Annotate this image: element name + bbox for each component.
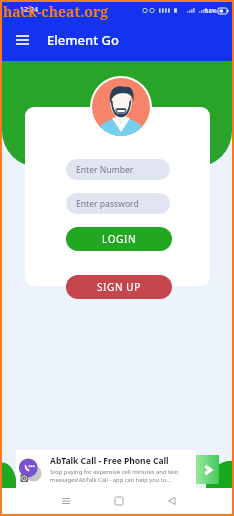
staticText: SIGN UP bbox=[97, 280, 141, 294]
button[interactable]: Back bbox=[160, 489, 184, 513]
staticText: messages!AbTalk Call - app can help you … bbox=[50, 476, 172, 484]
button[interactable]: Enter password bbox=[66, 193, 170, 214]
button[interactable]: LOGIN bbox=[66, 227, 172, 251]
staticText: 12:24 bbox=[20, 5, 38, 15]
staticText: Stop paying for expensive cell minutes a… bbox=[50, 468, 179, 476]
button[interactable]: Recents bbox=[54, 489, 78, 513]
staticText: hack-cheat.org bbox=[3, 2, 109, 21]
staticText: 58% bbox=[205, 7, 217, 15]
staticText: AbTalk Call - Free Phone Call bbox=[50, 455, 169, 467]
staticText: Enter password bbox=[76, 198, 139, 210]
button[interactable]: Enter Number bbox=[66, 159, 170, 180]
staticText: Element Go bbox=[47, 31, 119, 49]
staticText: LOGIN bbox=[102, 232, 137, 246]
button[interactable]: Home bbox=[107, 489, 131, 513]
button[interactable]: Menu bbox=[2, 20, 42, 60]
staticText: Enter Number bbox=[76, 164, 134, 176]
button[interactable]: Open ad bbox=[196, 455, 219, 484]
button[interactable]: SIGN UP bbox=[66, 275, 172, 299]
